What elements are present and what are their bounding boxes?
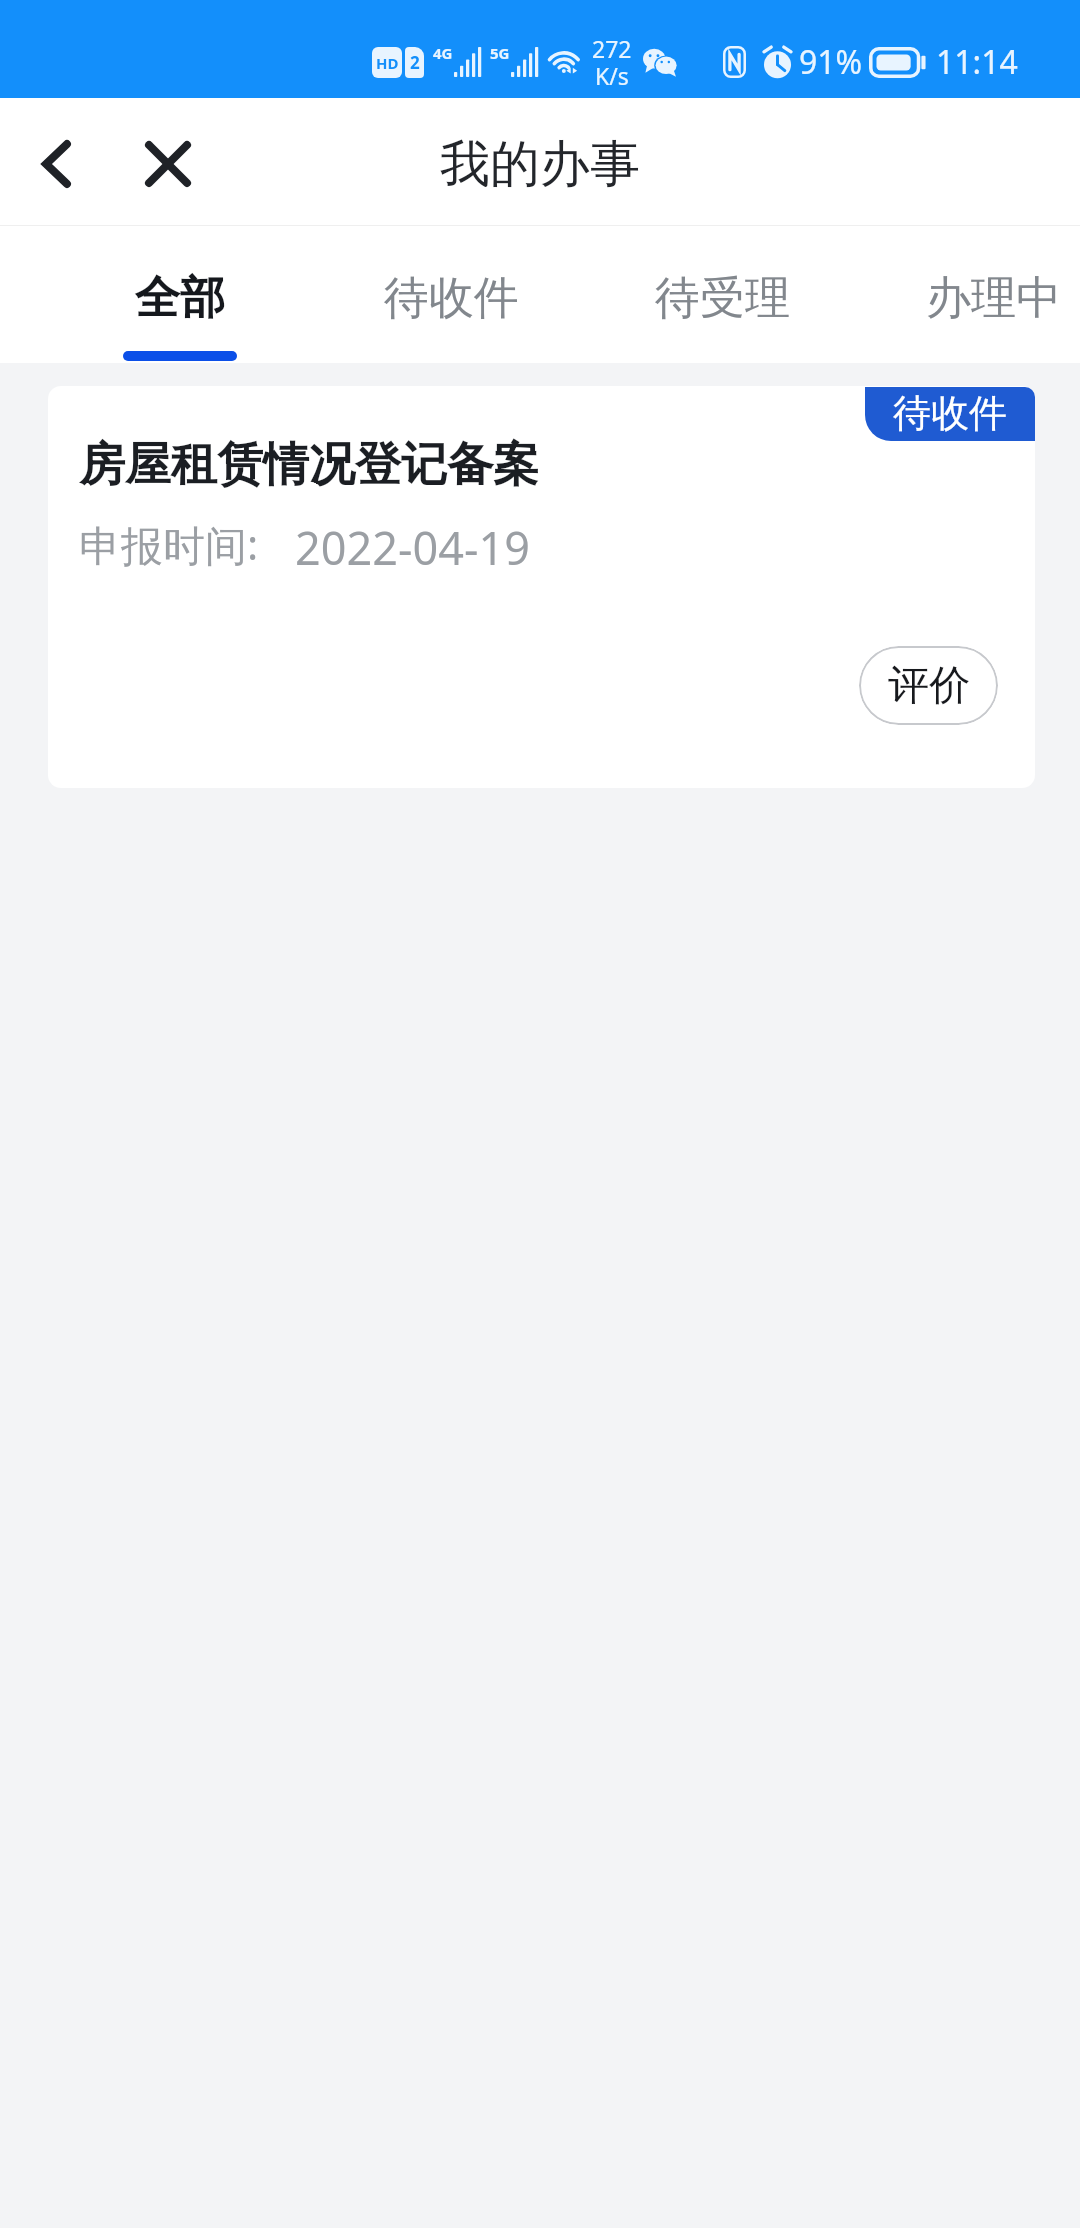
staticText: K/s xyxy=(595,60,629,91)
staticText: 我的办事 xyxy=(440,133,640,196)
button[interactable]: 评价 xyxy=(859,646,998,725)
button[interactable]: Close xyxy=(112,100,224,228)
staticText: 5G xyxy=(490,43,510,63)
staticText: 11:14 xyxy=(936,40,1018,84)
staticText: HD xyxy=(376,53,399,73)
staticText: 评价 xyxy=(888,660,970,712)
button[interactable]: 全部 xyxy=(45,226,315,363)
staticText: 全部 xyxy=(135,270,225,327)
button[interactable]: 待受理 xyxy=(587,226,857,363)
staticText: 2022-04-19 xyxy=(295,517,530,578)
staticText: 272 xyxy=(592,33,632,64)
button[interactable]: Back xyxy=(0,100,112,228)
button[interactable]: 办理中 xyxy=(858,226,1080,363)
staticText: 房屋租赁情况登记备案 xyxy=(79,436,539,494)
staticText: 待受理 xyxy=(655,270,790,327)
staticText: 待收件 xyxy=(893,389,1007,437)
staticText: : xyxy=(247,515,259,572)
staticText: 申报时间 xyxy=(79,521,247,574)
button[interactable]: 房屋租赁情况登记备案 xyxy=(48,386,1035,788)
staticText: 办理中 xyxy=(926,270,1061,327)
staticText: 待收件 xyxy=(384,270,519,327)
staticText: 91% xyxy=(799,40,863,84)
staticText: 2 xyxy=(410,51,420,74)
staticText: 4G xyxy=(433,43,453,63)
button[interactable]: 待收件 xyxy=(316,226,586,363)
